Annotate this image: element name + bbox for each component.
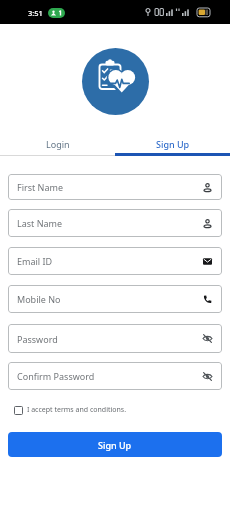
button[interactable]: First Name <box>8 174 222 200</box>
staticText: 3:51 <box>28 8 43 18</box>
button[interactable]: Password <box>8 324 222 353</box>
staticText: Sign Up <box>156 138 190 150</box>
button[interactable]: Confirm Password <box>8 362 222 390</box>
staticText: Email ID <box>17 255 53 267</box>
button[interactable]: I accept terms and conditions. <box>10 402 127 418</box>
button[interactable]: Sign Up <box>115 132 230 156</box>
staticText: Last Name <box>17 217 63 229</box>
button[interactable]: Login <box>0 132 115 156</box>
staticText: Sign Up <box>98 439 132 451</box>
staticText: First Name <box>17 181 63 193</box>
staticText: Password <box>17 333 58 345</box>
button[interactable]: Email ID <box>8 247 222 275</box>
staticText: Mobile No <box>17 293 61 305</box>
staticText: Login <box>46 138 70 150</box>
button[interactable]: Sign Up <box>8 432 222 457</box>
staticText: Confirm Password <box>17 370 95 382</box>
staticText: I accept terms and conditions. <box>27 405 127 415</box>
button[interactable]: Mobile No <box>8 285 222 313</box>
button[interactable]: Last Name <box>8 209 222 237</box>
